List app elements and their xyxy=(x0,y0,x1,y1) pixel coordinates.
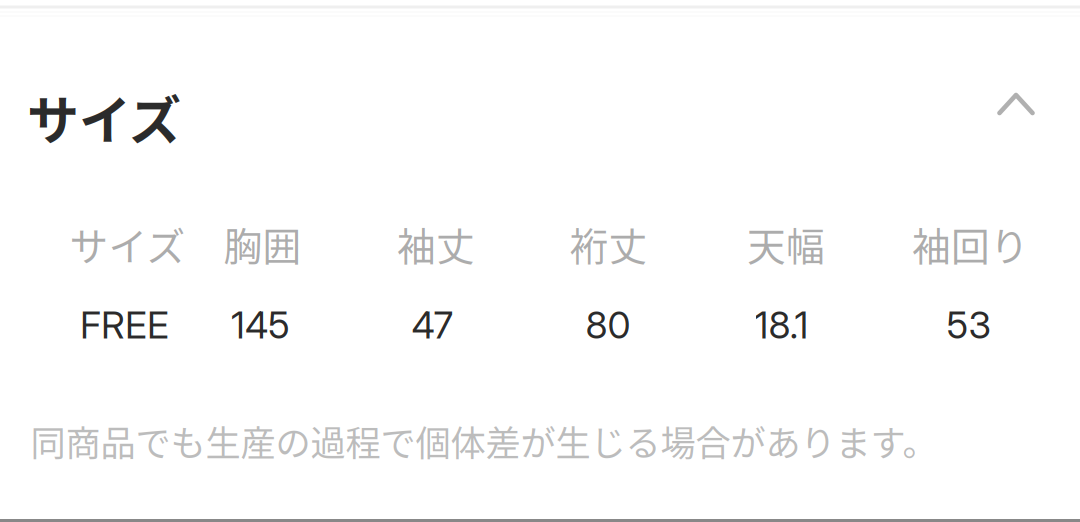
staticText: FREE xyxy=(80,302,169,348)
staticText: 同商品でも生産の過程で個体差が生じる場合があります。 xyxy=(30,415,937,466)
staticText: 袖丈 xyxy=(397,216,475,272)
button[interactable]: サイズ xyxy=(0,58,1080,174)
staticText: 裄丈 xyxy=(569,216,647,272)
staticText: 145 xyxy=(231,302,290,348)
staticText: 袖回り xyxy=(912,216,1029,272)
staticText: 胸囲 xyxy=(223,216,301,272)
staticText: 47 xyxy=(411,302,453,348)
staticText: サイズ xyxy=(69,216,185,272)
staticText: 53 xyxy=(946,302,991,348)
staticText: 80 xyxy=(585,302,630,348)
staticText: 18.1 xyxy=(754,302,808,348)
staticText: 天幅 xyxy=(747,216,825,272)
staticText: サイズ xyxy=(27,79,181,155)
